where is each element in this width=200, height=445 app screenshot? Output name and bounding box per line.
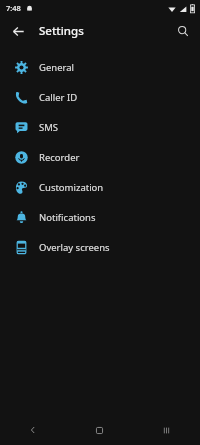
staticText: Customization [39,181,104,194]
staticText: Recorder [39,151,80,164]
button[interactable]: Back [0,415,66,445]
button[interactable]: Notifications [0,202,200,232]
button[interactable]: Overlay screens [0,232,200,262]
staticText: Notifications [39,211,96,224]
button[interactable]: Recent apps [133,415,200,445]
staticText: Overlay screens [39,241,110,254]
button[interactable]: SMS [0,112,200,142]
staticText: 7:48 [6,3,21,13]
staticText: SMS [39,121,59,134]
staticText: Settings [39,23,84,39]
button[interactable]: Home [66,415,133,445]
button[interactable]: Back [5,18,31,44]
button[interactable]: Customization [0,172,200,202]
staticText: General [39,61,75,74]
button[interactable]: Search [170,18,196,44]
button[interactable]: Caller ID [0,82,200,112]
staticText: Caller ID [39,91,78,104]
button[interactable]: General [0,52,200,82]
button[interactable]: Recorder [0,142,200,172]
